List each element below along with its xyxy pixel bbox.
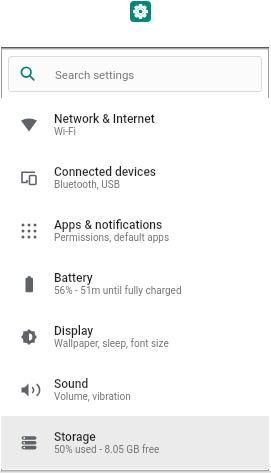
button[interactable]: Apps & notifications [1,204,269,257]
staticText: Sound [54,377,89,391]
staticText: Battery [54,271,93,285]
staticText: Storage [54,430,96,444]
staticText: 56% - 51m until fully charged [54,285,182,297]
button[interactable]: Display [1,310,269,363]
button[interactable]: Connected devices [1,151,269,204]
staticText: Network & Internet [54,112,155,126]
staticText: Wallpaper, sleep, font size [54,338,169,350]
button[interactable]: Storage [1,416,269,469]
button[interactable]: Sound [1,363,269,416]
staticText: Wi-Fi [54,126,77,138]
staticText: Search settings [55,68,135,81]
staticText: 50% used - 8.05 GB free [54,444,160,456]
staticText: Apps & notifications [54,218,163,232]
button[interactable]: Battery [1,257,269,310]
button[interactable]: Network & Internet [1,98,269,151]
button[interactable] [130,1,151,22]
staticText: Volume, vibration [54,391,131,403]
button[interactable]: Search settings [8,56,262,92]
staticText: Connected devices [54,165,157,179]
staticText: Permissions, default apps [54,232,170,244]
staticText: Bluetooth, USB [54,179,120,191]
staticText: Display [54,324,94,338]
